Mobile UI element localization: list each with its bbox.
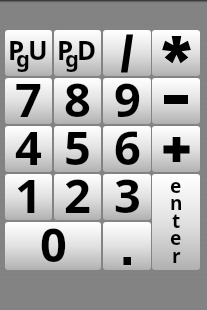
staticText: e <box>170 225 182 251</box>
button[interactable]: enter <box>152 174 200 270</box>
staticText: 0 <box>40 222 67 270</box>
button[interactable]: 0 <box>5 222 101 270</box>
staticText: 4 <box>15 126 42 172</box>
staticText: n <box>170 190 183 216</box>
button[interactable]: 7 <box>5 78 52 124</box>
staticText: P <box>8 32 25 67</box>
button[interactable]: 8 <box>54 78 101 124</box>
staticText: t <box>172 208 181 234</box>
staticText: 9 <box>114 78 141 124</box>
staticText: U <box>28 32 48 67</box>
button[interactable]: 4 <box>5 126 52 172</box>
staticText: 7 <box>15 78 42 124</box>
button[interactable]: Page D <box>54 30 101 76</box>
staticText: 2 <box>64 174 91 220</box>
button[interactable]: 9 <box>103 78 151 124</box>
button[interactable]: Decimal point <box>103 222 151 270</box>
staticText: g <box>65 43 79 73</box>
staticText: P <box>57 32 74 67</box>
staticText: 5 <box>64 126 91 172</box>
button[interactable]: 6 <box>103 126 151 172</box>
staticText: 3 <box>114 174 141 220</box>
button[interactable]: Divide <box>103 30 151 76</box>
staticText: e <box>170 174 182 199</box>
button[interactable]: 5 <box>54 126 101 172</box>
staticText: 1 <box>15 174 42 220</box>
staticText: 8 <box>64 78 91 124</box>
staticText: g <box>16 43 30 73</box>
button[interactable]: 3 <box>103 174 151 220</box>
button[interactable]: Minus <box>152 78 200 124</box>
staticText: 6 <box>114 126 141 172</box>
staticText: r <box>172 243 181 269</box>
button[interactable]: 2 <box>54 174 101 220</box>
button[interactable]: Plus <box>152 126 200 172</box>
staticText: D <box>77 32 97 67</box>
button[interactable]: 1 <box>5 174 52 220</box>
button[interactable]: Page U <box>5 30 52 76</box>
button[interactable]: Multiply <box>152 30 200 76</box>
